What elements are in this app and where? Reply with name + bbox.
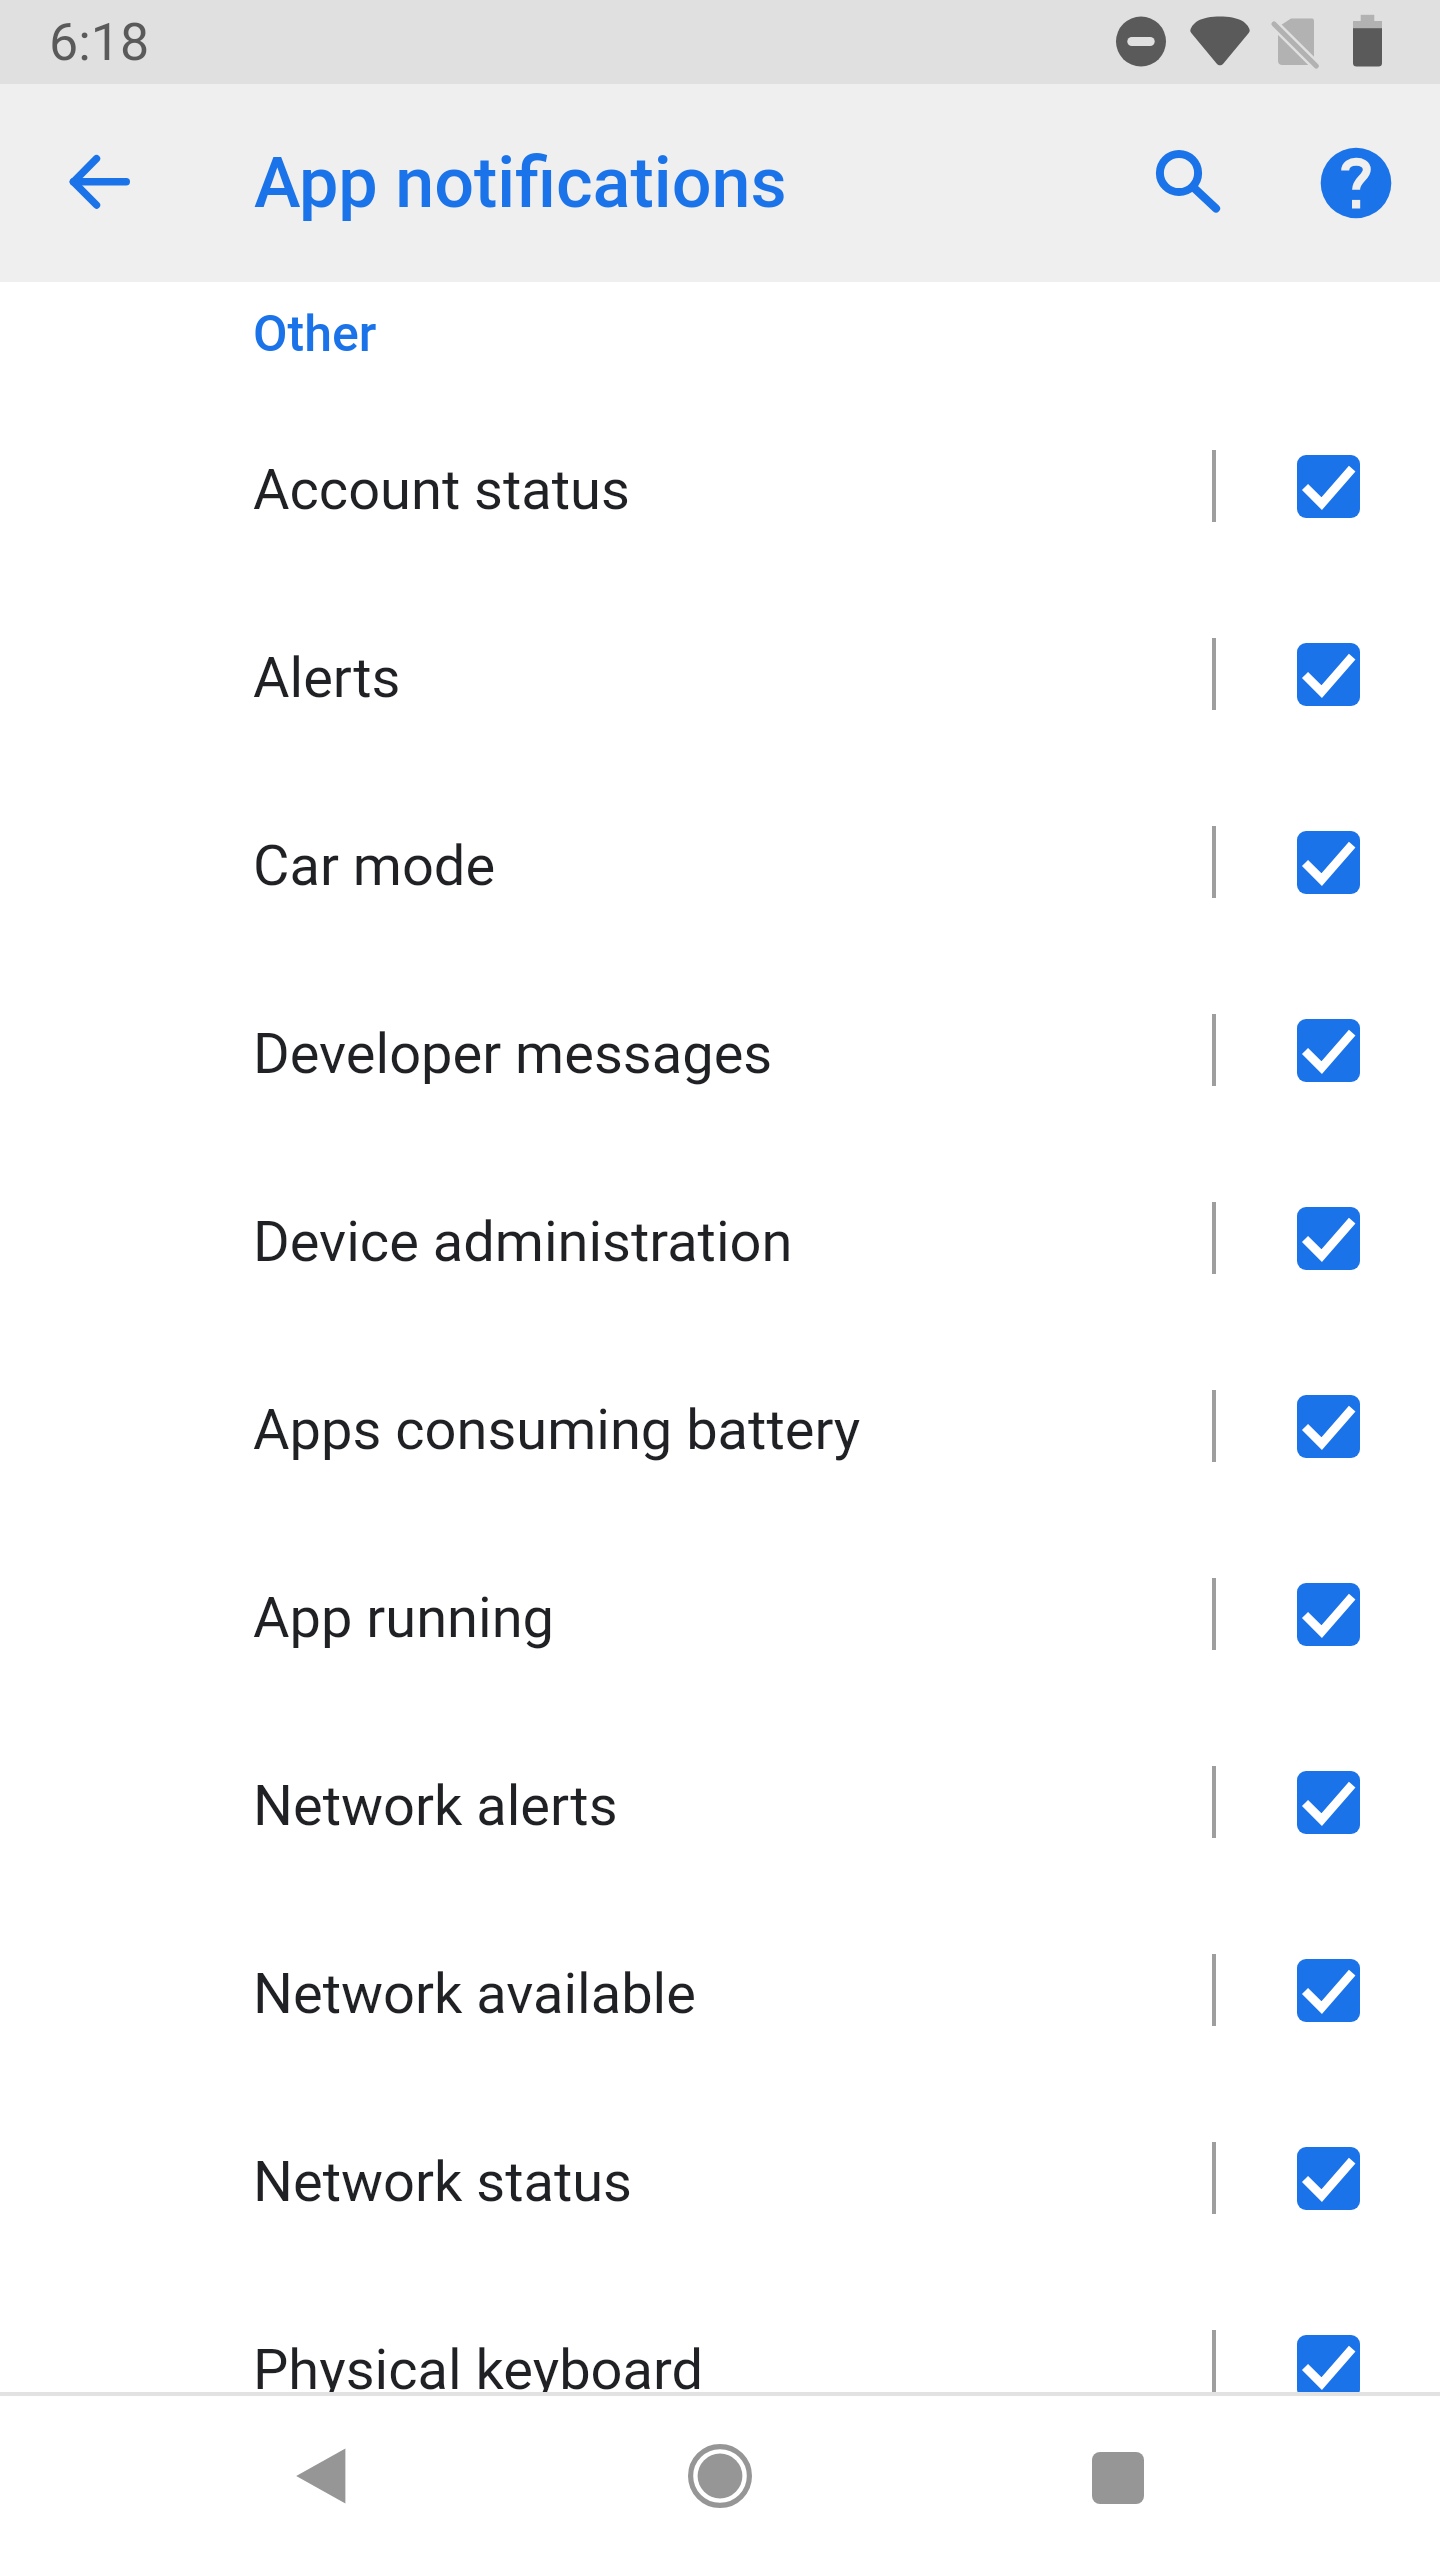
button[interactable]: Account status, on: [1297, 455, 1360, 518]
button[interactable]: Device administration: [0, 1144, 1440, 1332]
button[interactable]: Recent apps: [1058, 2418, 1178, 2538]
button[interactable]: Device administration, on: [1297, 1207, 1360, 1270]
button[interactable]: Network alerts, on: [1297, 1771, 1360, 1834]
button[interactable]: Network available: [0, 1896, 1440, 2084]
staticText: Alerts: [253, 645, 1212, 711]
button[interactable]: Developer messages: [0, 956, 1440, 1144]
staticText: Network alerts: [253, 1773, 1212, 1839]
button[interactable]: Alerts: [0, 580, 1440, 768]
button[interactable]: Back: [265, 2418, 385, 2538]
button[interactable]: Alerts, on: [1297, 643, 1360, 706]
button[interactable]: Apps consuming battery, on: [1297, 1395, 1360, 1458]
staticText: 6:18: [49, 12, 150, 73]
button[interactable]: Account status: [0, 392, 1440, 580]
staticText: Device administration: [253, 1209, 1212, 1275]
staticText: Network available: [253, 1961, 1212, 2027]
button[interactable]: Search: [1116, 120, 1242, 246]
staticText: Developer messages: [253, 1021, 1212, 1087]
staticText: Network status: [253, 2149, 1212, 2215]
button[interactable]: Network alerts: [0, 1708, 1440, 1896]
staticText: Physical keyboard: [253, 2337, 1212, 2392]
button[interactable]: Physical keyboard, on: [1297, 2335, 1360, 2392]
button[interactable]: Help: [1293, 120, 1419, 246]
button[interactable]: App running: [0, 1520, 1440, 1708]
button[interactable]: Network available, on: [1297, 1959, 1360, 2022]
button[interactable]: Network status, on: [1297, 2147, 1360, 2210]
staticText: Car mode: [253, 833, 1212, 899]
staticText: App running: [253, 1585, 1212, 1651]
button[interactable]: Car mode: [0, 768, 1440, 956]
staticText: App notifications: [254, 142, 787, 224]
staticText: Account status: [253, 457, 1212, 523]
button[interactable]: App running, on: [1297, 1583, 1360, 1646]
button[interactable]: Physical keyboard: [0, 2272, 1440, 2392]
button[interactable]: Apps consuming battery: [0, 1332, 1440, 1520]
staticText: Apps consuming battery: [253, 1397, 1212, 1463]
staticText: Other: [253, 305, 377, 364]
button[interactable]: Navigate up: [37, 120, 163, 246]
button[interactable]: Network status: [0, 2084, 1440, 2272]
button[interactable]: Home: [660, 2418, 780, 2538]
button[interactable]: Car mode, on: [1297, 831, 1360, 894]
button[interactable]: Developer messages, on: [1297, 1019, 1360, 1082]
